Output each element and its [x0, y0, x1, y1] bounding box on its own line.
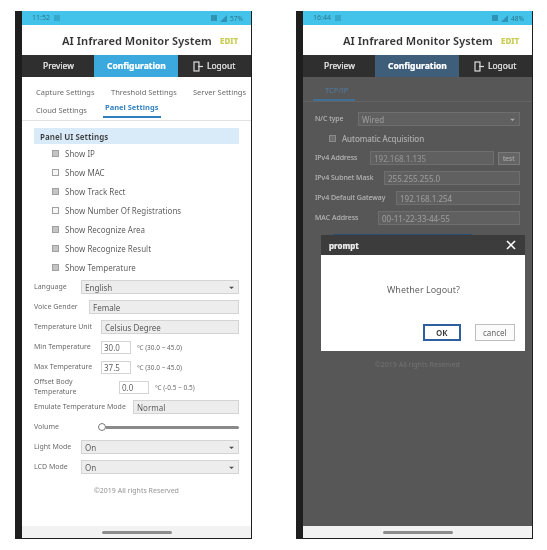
staticText: On: [85, 462, 97, 473]
staticText: MAC Address: [315, 213, 359, 223]
button[interactable]: Temperature Unit: [34, 317, 239, 337]
button[interactable]: Save: [333, 234, 472, 250]
staticText: Threshold Settings: [111, 87, 177, 97]
staticText: Normal: [137, 402, 166, 413]
staticText: IPv4 Address: [315, 153, 358, 163]
staticText: ℃ (30.0 ~ 45.0): [137, 343, 182, 352]
staticText: AI Infrared Monitor System: [343, 33, 493, 48]
button[interactable]: Cloud Settings: [34, 103, 89, 117]
staticText: Automatic Acquisition: [342, 133, 425, 144]
button[interactable]: Panel Settings: [103, 102, 161, 118]
staticText: 00-11-22-33-44-55: [382, 213, 450, 224]
staticText: Language: [34, 282, 67, 292]
button[interactable]: Preview: [303, 55, 375, 77]
staticText: Show IP: [65, 148, 95, 159]
button[interactable]: test: [498, 152, 520, 165]
staticText: ©2019 All rights Reserved: [94, 486, 179, 496]
button[interactable]: Capture Settings: [34, 85, 97, 99]
staticText: Show Number Of Registrations: [65, 205, 182, 216]
button[interactable]: Server Settings: [191, 85, 249, 99]
staticText: Whether Logout?: [387, 283, 460, 295]
staticText: Celsius Degree: [105, 322, 161, 333]
button[interactable]: MAC Address: [315, 208, 520, 228]
staticText: LCD Mode: [34, 462, 68, 472]
staticText: cancel: [483, 327, 507, 338]
button[interactable]: Language: [34, 277, 239, 297]
staticText: Show Recognize Area: [65, 224, 146, 235]
button[interactable]: Automatic Acquisition: [315, 129, 520, 148]
staticText: Show Recognize Result: [65, 243, 152, 254]
staticText: EDIT: [501, 35, 520, 46]
button[interactable]: Light Mode: [34, 437, 239, 457]
staticText: Wired: [362, 114, 385, 125]
button[interactable]: Min Temperature: [34, 337, 239, 357]
staticText: prompt: [329, 240, 359, 251]
staticText: N/C type: [315, 114, 344, 124]
button[interactable]: Configuration: [375, 55, 459, 77]
staticText: Max Temperature: [34, 362, 93, 372]
staticText: Min Temperature: [34, 342, 91, 352]
staticText: AI Infrared Monitor System: [62, 33, 212, 48]
staticText: Show Temperature: [65, 262, 136, 273]
staticText: Temperature Unit: [34, 322, 92, 332]
staticText: Panel UI Settings: [40, 131, 109, 142]
staticText: Preview: [43, 60, 74, 72]
staticText: 48%: [511, 14, 524, 23]
button[interactable]: Show Track Rect: [34, 182, 239, 201]
staticText: On: [85, 442, 97, 453]
staticText: TCP/IP: [325, 85, 349, 95]
staticText: Preview: [324, 60, 355, 72]
staticText: 30.0: [104, 342, 120, 353]
button[interactable]: Show Temperature: [34, 258, 239, 277]
button[interactable]: Show Recognize Area: [34, 220, 239, 239]
button[interactable]: Show Recognize Result: [34, 239, 239, 258]
staticText: Server Settings: [193, 87, 247, 97]
button[interactable]: Configuration: [94, 55, 178, 77]
button[interactable]: Max Temperature: [34, 357, 239, 377]
button[interactable]: IPv4 Default Gateway: [315, 188, 520, 208]
button[interactable]: Show IP: [34, 144, 239, 163]
button[interactable]: N/C type: [315, 109, 520, 129]
other: Logout: [194, 62, 203, 71]
staticText: 0.0: [122, 382, 134, 393]
button[interactable]: Threshold Settings: [109, 85, 179, 99]
button[interactable]: Volume: [34, 417, 239, 437]
staticText: 192.168.1.135: [374, 153, 427, 164]
staticText: Emulate Temperature Mode: [34, 402, 126, 412]
staticText: Light Mode: [34, 442, 72, 452]
staticText: ℃ (-0.5 ~ 0.5): [155, 383, 195, 392]
staticText: Configuration: [107, 60, 166, 72]
staticText: test: [503, 154, 515, 163]
button[interactable]: Emulate Temperature Mode: [34, 397, 239, 417]
staticText: 37.5: [104, 362, 120, 373]
button[interactable]: Close: [503, 237, 519, 253]
button[interactable]: EDIT: [216, 31, 243, 50]
staticText: 16:44: [313, 13, 331, 23]
other: Logout: [475, 62, 484, 71]
button[interactable]: EDIT: [497, 31, 524, 50]
button[interactable]: cancel: [475, 324, 515, 341]
staticText: IPv4 Default Gateway: [315, 193, 386, 203]
staticText: Capture Settings: [36, 87, 95, 97]
staticText: 11:52: [32, 13, 50, 23]
staticText: Show MAC: [65, 167, 105, 178]
button[interactable]: Show Number Of Registrations: [34, 201, 239, 220]
button[interactable]: Logout: [459, 55, 532, 77]
button[interactable]: Preview: [22, 55, 94, 77]
button[interactable]: IPv4 Subnet Mask: [315, 168, 520, 188]
button[interactable]: OK: [423, 324, 461, 341]
button[interactable]: Show MAC: [34, 163, 239, 182]
button[interactable]: Logout: [178, 55, 251, 77]
staticText: EDIT: [220, 35, 239, 46]
staticText: Show Track Rect: [65, 186, 126, 197]
staticText: 255.255.255.0: [388, 173, 441, 184]
button[interactable]: Offset Body Temperature: [34, 377, 239, 397]
staticText: Volume: [34, 422, 59, 432]
button[interactable]: TCP/IP: [303, 85, 355, 101]
button[interactable]: LCD Mode: [34, 457, 239, 477]
staticText: ©2019 All rights Reserved: [375, 360, 460, 370]
button[interactable]: Voice Gender: [34, 297, 239, 317]
staticText: English: [85, 282, 113, 293]
staticText: OK: [436, 327, 448, 338]
